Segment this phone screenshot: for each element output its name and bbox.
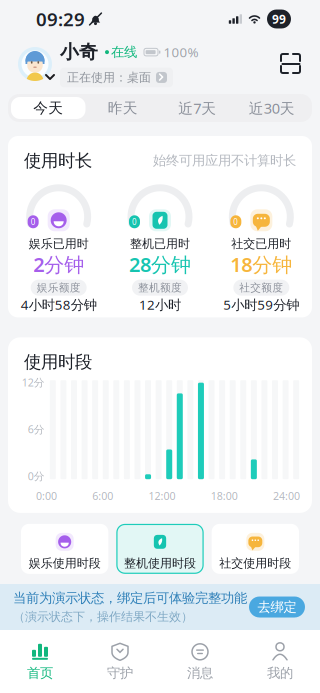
staticText: 100% [163, 43, 198, 61]
staticText: 09:29 [36, 7, 85, 31]
staticText: 0分 [28, 469, 45, 483]
staticText: 我的 [267, 665, 293, 681]
staticText: 首页 [27, 665, 53, 681]
button[interactable]: 我的 [240, 630, 320, 693]
staticText: 99 [272, 11, 286, 27]
staticText: 12分 [22, 375, 45, 389]
button[interactable]: 守护 [80, 630, 160, 693]
staticText: 近7天 [178, 98, 216, 118]
button[interactable]: 首页 [0, 630, 80, 693]
staticText: 在线 [111, 44, 137, 60]
button[interactable]: 切换孩子 [18, 47, 58, 81]
button[interactable]: 消息 [160, 630, 240, 693]
staticText: 娱乐已用时 [29, 236, 89, 251]
staticText: （演示状态下，操作结果不生效） [13, 609, 193, 624]
staticText: 24:00 [273, 489, 300, 503]
staticText: 使用时段 [24, 351, 92, 373]
staticText: 当前为演示状态，绑定后可体验完整功能 [13, 590, 247, 606]
staticText: 18:00 [211, 489, 238, 503]
staticText: 整机额度 [138, 281, 182, 294]
staticText: 6分 [28, 422, 45, 436]
staticText: 社交已用时 [231, 236, 291, 251]
staticText: 守护 [107, 665, 133, 681]
staticText: 整机已用时 [130, 236, 190, 251]
staticText: 社交额度 [239, 281, 283, 294]
staticText: 今天 [33, 99, 63, 117]
staticText: 娱乐使用时段 [29, 556, 101, 571]
staticText: 娱乐额度 [37, 281, 81, 294]
button[interactable]: 今天 [11, 97, 85, 119]
staticText: 始终可用应用不计算时长 [153, 152, 296, 169]
staticText: 使用时长 [24, 150, 92, 171]
staticText: 近30天 [249, 98, 295, 118]
staticText: 去绑定 [257, 599, 296, 615]
button[interactable]: 整机使用时段 [116, 524, 204, 574]
staticText: 整机使用时段 [124, 556, 196, 571]
staticText: 4小时58分钟 [21, 296, 97, 313]
staticText: 0:00 [36, 489, 57, 503]
staticText: 5小时59分钟 [223, 296, 299, 313]
button[interactable]: 娱乐使用时段 [21, 524, 108, 574]
staticText: 0 [233, 216, 238, 227]
button[interactable]: 扫一扫 [280, 53, 302, 75]
staticText: 小奇 [60, 41, 98, 64]
button[interactable]: 社交使用时段 [212, 524, 299, 574]
staticText: 正在使用：桌面 [67, 70, 151, 85]
staticText: 12:00 [148, 489, 175, 503]
staticText: 28分钟 [129, 251, 191, 278]
staticText: 12小时 [139, 296, 181, 313]
button[interactable]: 正在使用：桌面 [60, 68, 173, 87]
staticText: 昨天 [108, 99, 138, 117]
button[interactable]: 近30天 [234, 97, 309, 119]
staticText: 0 [132, 216, 137, 227]
staticText: 18分钟 [230, 251, 292, 278]
button[interactable]: 昨天 [85, 97, 160, 119]
button[interactable]: 近7天 [160, 97, 234, 119]
button[interactable]: 去绑定 [249, 596, 305, 617]
staticText: 消息 [187, 665, 213, 681]
staticText: 2分钟 [33, 251, 84, 278]
staticText: 社交使用时段 [219, 556, 291, 571]
staticText: 6:00 [92, 489, 113, 503]
staticText: 0 [31, 216, 36, 227]
